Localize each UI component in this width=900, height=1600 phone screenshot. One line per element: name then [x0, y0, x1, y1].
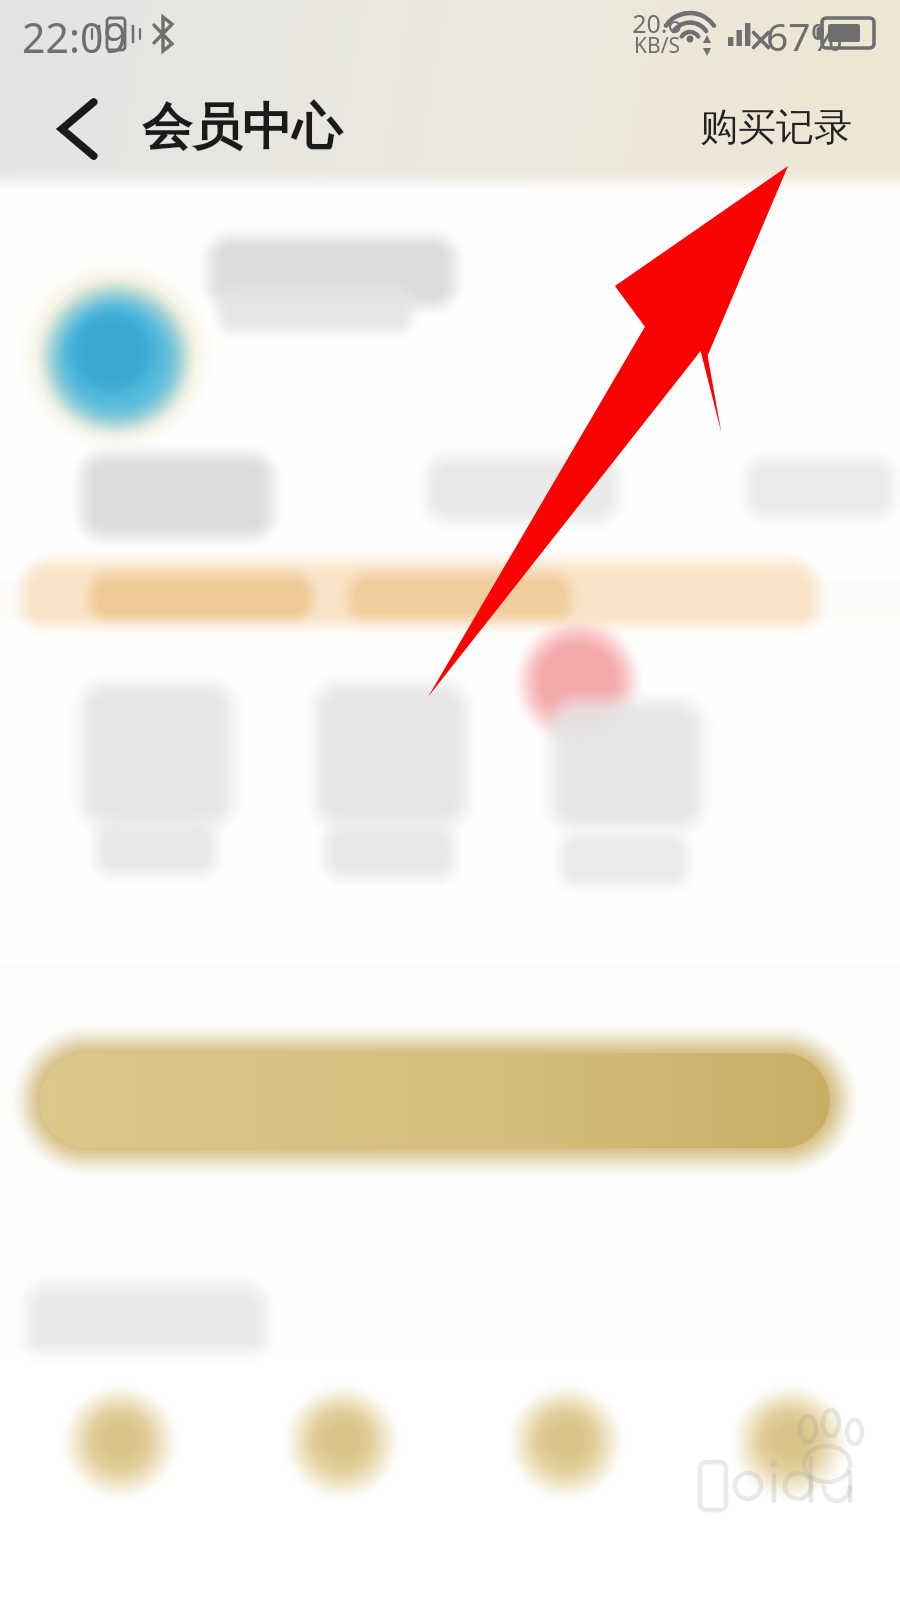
button[interactable]: 会员服务 — [62, 1398, 178, 1530]
button[interactable]: 会员服务 — [284, 1398, 400, 1530]
staticText: KB/S — [626, 31, 688, 60]
staticText: 20.6 — [628, 6, 686, 40]
button[interactable]: 会员权益 — [36, 572, 804, 624]
button[interactable]: 返回 — [24, 82, 120, 176]
button[interactable]: 立即开通会员 — [40, 1053, 830, 1148]
staticText: 67% — [766, 9, 844, 62]
staticText: 22:09 — [22, 9, 127, 65]
staticText: 购买记录 — [700, 103, 852, 151]
button[interactable]: 个人资料 — [20, 228, 880, 420]
button[interactable]: 会员服务 — [508, 1398, 624, 1530]
button[interactable]: 权益项 — [330, 696, 462, 886]
button[interactable]: 会员服务 — [732, 1398, 848, 1530]
button[interactable]: 权益项 — [566, 696, 698, 886]
button[interactable]: 权益项 — [96, 696, 228, 886]
staticText: 会员中心 — [142, 96, 342, 159]
button[interactable]: 购买记录 — [700, 94, 870, 160]
